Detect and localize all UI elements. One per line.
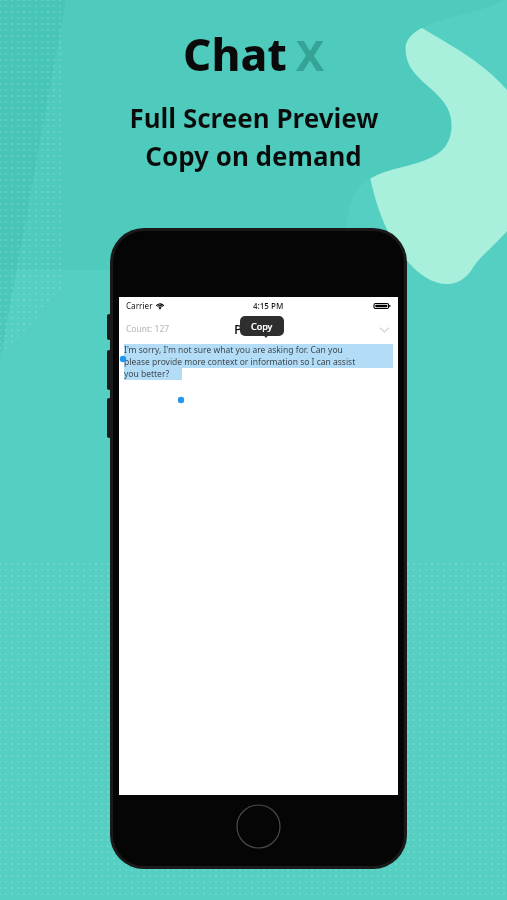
staticText: Preview	[234, 320, 284, 338]
button[interactable]: Collapse	[375, 320, 393, 338]
staticText: Carrier	[126, 300, 153, 311]
staticText: Copy on demand	[145, 138, 362, 173]
button[interactable]: Copy	[240, 316, 284, 336]
staticText: I'm sorry, I'm not sure what you are ask…	[124, 344, 343, 356]
staticText: you better?	[124, 368, 170, 380]
staticText: 4:15 PM	[253, 300, 284, 311]
staticText: Count: 127	[126, 323, 170, 335]
staticText: X	[296, 26, 325, 83]
staticText: Chat	[183, 24, 287, 84]
staticText: Full Screen Preview	[129, 100, 379, 135]
button[interactable]: Home	[236, 804, 281, 849]
staticText: please provide more context or informati…	[124, 356, 356, 368]
staticText: Copy	[251, 320, 273, 332]
